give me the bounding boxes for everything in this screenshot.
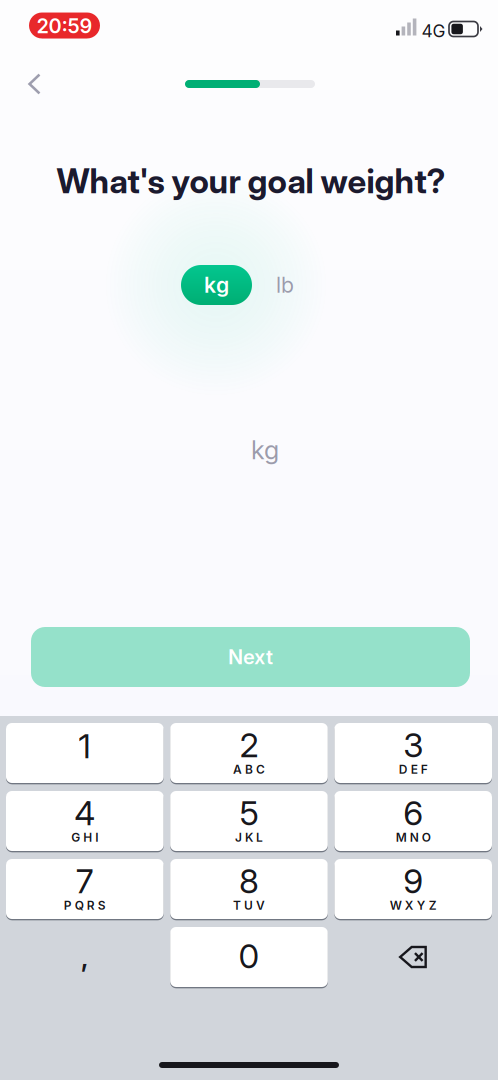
staticText: 20:59	[36, 14, 92, 38]
staticText: ,	[81, 941, 89, 973]
staticText: 1	[78, 726, 91, 766]
button[interactable]: 0	[170, 927, 328, 987]
button[interactable]: 6	[334, 791, 492, 851]
staticText: W X Y Z	[390, 898, 437, 912]
button[interactable]: 8	[170, 859, 328, 919]
staticText: A B C	[233, 762, 265, 776]
staticText: 6	[403, 793, 423, 833]
staticText: D E F	[399, 762, 428, 776]
button[interactable]: Back	[11, 61, 57, 107]
staticText: T U V	[233, 898, 265, 912]
button[interactable]: 5	[170, 791, 328, 851]
button[interactable]: Next	[31, 627, 470, 687]
button[interactable]: Delete	[334, 927, 492, 987]
button[interactable]: 1	[6, 723, 164, 783]
button[interactable]: kg	[181, 265, 252, 305]
staticText: 4	[74, 793, 95, 833]
staticText: M N O	[396, 830, 431, 844]
staticText: J K L	[235, 830, 263, 844]
button[interactable]: 3	[334, 723, 492, 783]
staticText: 7	[76, 861, 94, 901]
button[interactable]: 4	[6, 791, 164, 851]
staticText: G H I	[71, 830, 98, 844]
button[interactable]: ,	[6, 927, 164, 987]
button[interactable]: lb	[263, 265, 307, 305]
staticText: 2	[239, 725, 258, 765]
staticText: 4G	[421, 20, 445, 41]
staticText: 3	[403, 725, 423, 765]
button[interactable]: 9	[334, 859, 492, 919]
staticText: kg	[204, 272, 229, 298]
staticText: 8	[239, 861, 259, 901]
staticText: 5	[239, 793, 258, 833]
staticText: kg	[251, 435, 279, 465]
staticText: Next	[228, 645, 273, 669]
staticText: 0	[238, 936, 259, 976]
staticText: What's your goal weight?	[56, 161, 445, 201]
staticText: P Q R S	[64, 898, 106, 912]
staticText: lb	[276, 272, 294, 298]
button[interactable]: 2	[170, 723, 328, 783]
staticText: 9	[403, 861, 423, 901]
button[interactable]: 7	[6, 859, 164, 919]
